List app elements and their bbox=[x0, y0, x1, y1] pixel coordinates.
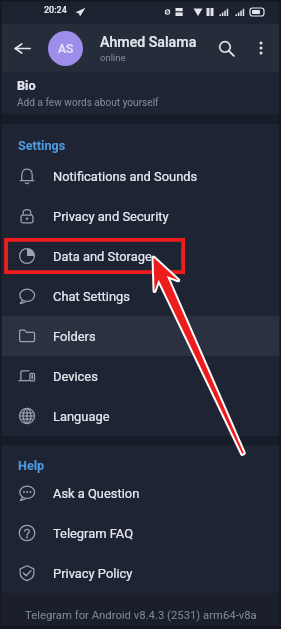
staticText: Data and Storage bbox=[53, 249, 152, 264]
button[interactable]: Bio bbox=[0, 72, 281, 114]
staticText: Settings bbox=[18, 138, 66, 153]
button[interactable]: Ask a Question bbox=[0, 473, 281, 513]
staticText: Folders bbox=[53, 329, 96, 344]
button[interactable]: Privacy Policy bbox=[0, 553, 281, 593]
staticText: Ask a Question bbox=[53, 486, 140, 501]
button[interactable]: Back bbox=[0, 24, 44, 72]
staticText: AS bbox=[58, 42, 74, 56]
button[interactable]: Notifications and Sounds bbox=[0, 156, 281, 196]
button[interactable]: Search bbox=[207, 24, 245, 72]
button[interactable]: More options bbox=[245, 24, 277, 72]
staticText: Privacy and Security bbox=[53, 209, 169, 224]
staticText: Privacy Policy bbox=[53, 566, 133, 581]
staticText: Ahmed Salama bbox=[100, 34, 197, 51]
button[interactable]: Chat Settings bbox=[0, 276, 281, 316]
staticText: online bbox=[100, 52, 126, 63]
staticText: Devices bbox=[53, 369, 98, 384]
staticText: Telegram for Android v8.4.3 (2531) arm64… bbox=[25, 609, 257, 622]
staticText: 20:24 bbox=[44, 5, 67, 16]
staticText: Notifications and Sounds bbox=[53, 169, 198, 184]
staticText: Help bbox=[18, 458, 45, 473]
staticText: Add a few words about yourself bbox=[17, 97, 159, 109]
button[interactable]: Devices bbox=[0, 356, 281, 396]
button[interactable]: Data and Storage bbox=[0, 236, 281, 276]
button[interactable]: Telegram FAQ bbox=[0, 513, 281, 553]
button[interactable]: Folders bbox=[0, 316, 281, 356]
staticText: Telegram FAQ bbox=[53, 526, 134, 541]
staticText: Language bbox=[53, 409, 110, 424]
button[interactable]: Privacy and Security bbox=[0, 196, 281, 236]
button[interactable]: Language bbox=[0, 396, 281, 436]
staticText: Bio bbox=[17, 78, 36, 93]
staticText: Chat Settings bbox=[53, 289, 130, 304]
